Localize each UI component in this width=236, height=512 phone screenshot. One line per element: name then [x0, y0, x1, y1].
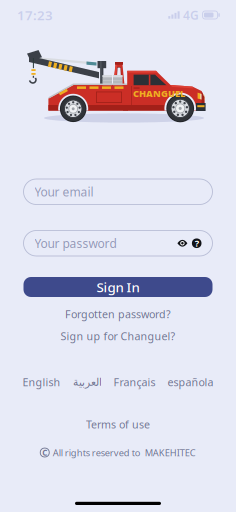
button[interactable]: Password help: [192, 238, 201, 248]
staticText: Sign up for Changuel?: [60, 329, 175, 343]
button[interactable]: Sign In: [23, 277, 212, 297]
button[interactable]: Show password: [177, 239, 187, 248]
staticText: 4G: [183, 7, 199, 23]
button[interactable]: Forgotten password?: [43, 303, 193, 325]
staticText: Your email: [34, 184, 93, 200]
staticText: 17:23: [17, 6, 53, 24]
button[interactable]: Français: [107, 375, 161, 389]
staticText: C: [42, 447, 47, 458]
button[interactable]: Sign up for Changuel?: [43, 325, 193, 347]
button[interactable]: Terms of use: [86, 417, 150, 431]
staticText: Your password: [34, 235, 116, 251]
staticText: العربية: [72, 376, 101, 388]
staticText: All rights reserved to MAKEHITEC: [53, 446, 196, 459]
staticText: ?: [195, 237, 199, 249]
button[interactable]: English: [16, 375, 66, 389]
button[interactable]: española: [161, 375, 219, 389]
staticText: Français: [113, 375, 155, 389]
staticText: Forgotten password?: [65, 307, 171, 321]
staticText: Sign In: [96, 278, 139, 296]
staticText: Terms of use: [86, 417, 150, 431]
staticText: española: [167, 375, 213, 389]
staticText: English: [22, 375, 60, 389]
button[interactable]: العربية: [66, 376, 107, 388]
staticText: CHANGUEL: [133, 87, 185, 100]
